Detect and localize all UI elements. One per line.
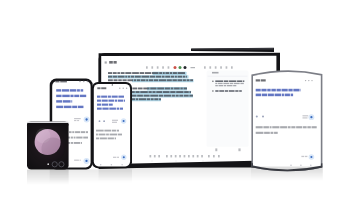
button[interactable]: Start interpreting	[308, 114, 315, 121]
button[interactable]: Play translation	[83, 157, 91, 165]
button[interactable]: Start interpreting	[83, 116, 91, 124]
button[interactable]: Play translation	[308, 153, 315, 160]
button[interactable]: Start interpreting	[120, 118, 127, 125]
button[interactable]: Play translation	[120, 154, 127, 161]
